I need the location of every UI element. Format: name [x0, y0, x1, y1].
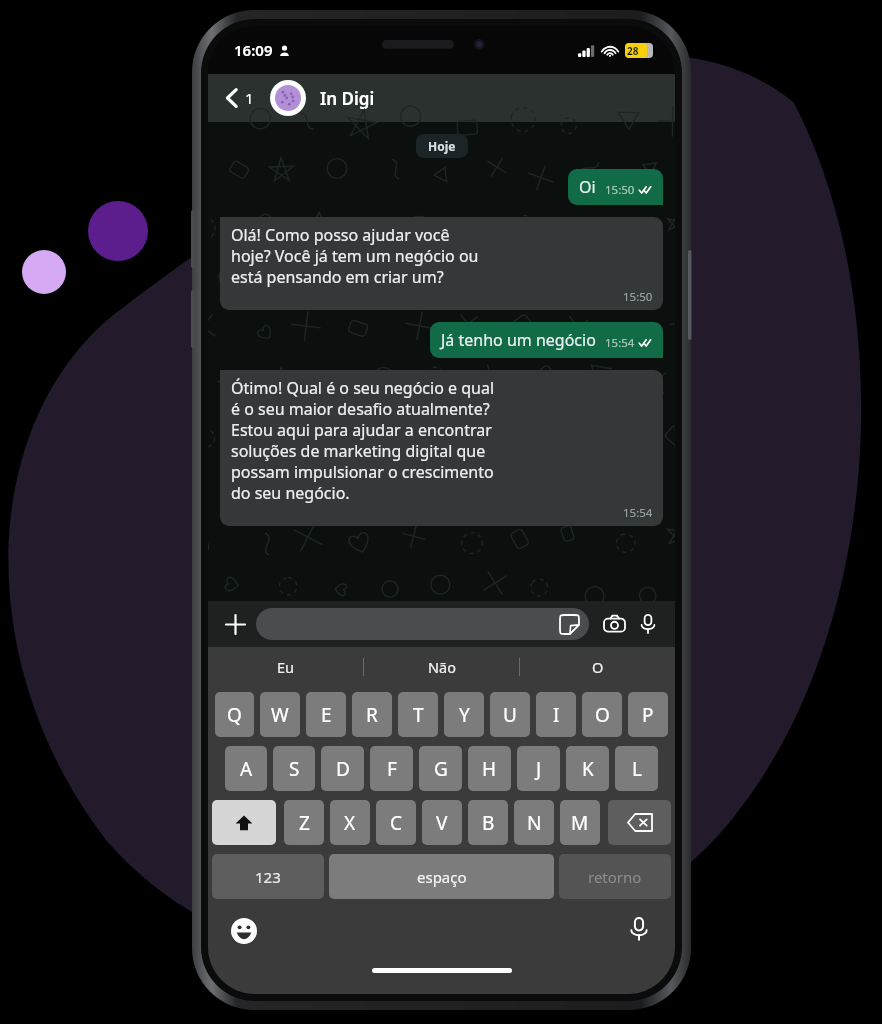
staticText: J: [536, 756, 542, 782]
staticText: V: [436, 810, 448, 836]
staticText: Não: [428, 657, 456, 677]
button[interactable]: Ótimo! Qual é o seu negócio e qual é o s…: [220, 370, 663, 526]
staticText: T: [413, 702, 424, 728]
button[interactable]: retorno: [559, 854, 671, 899]
button[interactable]: Profile photo: [270, 80, 306, 116]
staticText: retorno: [588, 867, 642, 887]
button[interactable]: Olá! Como posso ajudar você hoje? Você j…: [220, 217, 663, 310]
button[interactable]: W: [260, 692, 300, 737]
staticText: B: [482, 810, 495, 836]
button[interactable]: L: [615, 746, 658, 791]
staticText: I: [553, 702, 560, 728]
staticText: Oi: [579, 176, 596, 198]
staticText: W: [271, 702, 289, 728]
staticText: D: [336, 756, 350, 782]
button[interactable]: U: [490, 692, 530, 737]
button[interactable]: 123: [212, 854, 324, 899]
staticText: O: [595, 702, 610, 728]
button[interactable]: X: [330, 800, 370, 845]
staticText: R: [366, 702, 378, 728]
staticText: M: [571, 810, 589, 836]
staticText: Olá! Como posso ajudar você hoje? Você j…: [231, 224, 479, 288]
staticText: 15:54: [605, 335, 635, 351]
staticText: 15:50: [605, 182, 635, 198]
staticText: Já tenho um negócio: [441, 329, 596, 351]
staticText: Z: [299, 810, 310, 836]
button[interactable]: H: [468, 746, 511, 791]
button[interactable]: Camera: [599, 609, 629, 639]
staticText: Eu: [277, 657, 295, 677]
button[interactable]: G: [419, 746, 462, 791]
button[interactable]: espaço: [329, 854, 554, 899]
staticText: F: [387, 756, 397, 782]
button[interactable]: P: [628, 692, 668, 737]
staticText: C: [390, 810, 403, 836]
staticText: 1: [245, 88, 254, 108]
button[interactable]: S: [273, 746, 315, 791]
button[interactable]: Q: [215, 692, 254, 737]
staticText: 15:50: [623, 289, 653, 305]
button[interactable]: I: [536, 692, 576, 737]
staticText: espaço: [417, 867, 467, 887]
staticText: A: [240, 756, 253, 782]
staticText: N: [527, 810, 542, 836]
button[interactable]: J: [517, 746, 560, 791]
staticText: E: [321, 702, 332, 728]
staticText: 123: [255, 867, 281, 887]
button[interactable]: Attach: [220, 609, 250, 639]
button[interactable]: Back: [222, 84, 258, 112]
staticText: U: [503, 702, 517, 728]
button[interactable]: A: [225, 746, 267, 791]
staticText: Y: [459, 702, 470, 728]
button[interactable]: Backspace: [608, 800, 671, 845]
button[interactable]: [256, 608, 589, 640]
staticText: Hoje: [428, 138, 456, 154]
staticText: 28: [627, 44, 639, 58]
button[interactable]: R: [352, 692, 392, 737]
staticText: L: [632, 756, 642, 782]
button[interactable]: C: [376, 800, 416, 845]
staticText: Q: [227, 702, 242, 728]
button[interactable]: D: [321, 746, 364, 791]
button[interactable]: B: [468, 800, 508, 845]
staticText: X: [344, 810, 356, 836]
staticText: Ótimo! Qual é o seu negócio e qual é o s…: [231, 377, 495, 504]
button[interactable]: Shift: [212, 800, 276, 845]
staticText: S: [289, 756, 300, 782]
button[interactable]: Dictation: [623, 913, 655, 945]
staticText: 16:09: [234, 40, 273, 60]
button[interactable]: Voice message: [633, 609, 663, 639]
staticText: H: [482, 756, 497, 782]
staticText: In Digi: [320, 87, 375, 110]
button[interactable]: Não: [364, 647, 519, 687]
button[interactable]: O: [582, 692, 622, 737]
staticText: 15:54: [623, 505, 653, 521]
button[interactable]: K: [566, 746, 609, 791]
staticText: K: [582, 756, 594, 782]
button[interactable]: Já tenho um negócio: [430, 322, 663, 358]
staticText: G: [434, 756, 448, 782]
button[interactable]: F: [370, 746, 413, 791]
button[interactable]: Eu: [208, 647, 363, 687]
button[interactable]: Y: [444, 692, 484, 737]
button[interactable]: M: [560, 800, 600, 845]
button[interactable]: O: [520, 647, 675, 687]
button[interactable]: T: [398, 692, 438, 737]
button[interactable]: N: [514, 800, 554, 845]
staticText: O: [592, 657, 604, 677]
button[interactable]: E: [306, 692, 346, 737]
staticText: P: [642, 702, 654, 728]
button[interactable]: V: [422, 800, 462, 845]
button[interactable]: Z: [284, 800, 324, 845]
button[interactable]: Emoji: [228, 915, 260, 947]
button[interactable]: Oi: [568, 169, 663, 205]
